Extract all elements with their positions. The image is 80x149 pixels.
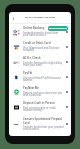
button[interactable]: More info — [65, 30, 69, 34]
staticText: PayPal — [23, 71, 33, 75]
button[interactable]: More info — [65, 90, 69, 94]
staticText: SELECT PAYMENT METHOD — [25, 16, 56, 19]
button[interactable]: ACH e-Check — [9, 54, 71, 69]
staticText: Transfer funds from your prepaid card ac… — [23, 125, 64, 131]
staticText: PayNearMe — [23, 86, 40, 90]
button[interactable]: Online Banking — [9, 24, 71, 39]
button[interactable]: Caesars Sportsbook Prepaid Card — [9, 114, 71, 134]
button[interactable]: PayNearMe — [9, 84, 71, 99]
staticText: RECOMMENDED — [49, 27, 67, 30]
staticText: Transfer funds with a light delay from y… — [23, 61, 64, 67]
button[interactable]: Back — [9, 14, 17, 22]
button[interactable]: More info — [65, 60, 69, 64]
staticText: Instantly transfer funds from your bank … — [23, 31, 64, 37]
staticText: Online Banking — [23, 26, 45, 30]
staticText: Find a casino cage or retail location ne… — [23, 106, 64, 112]
button[interactable]: Credit or Debit Card — [9, 39, 71, 54]
staticText: Caesars Sportsbook Prepaid Card — [23, 117, 64, 124]
button[interactable]: Deposit Cash in Person — [9, 99, 71, 114]
staticText: Visa, Mastercard and Discover accepted — [23, 46, 64, 52]
staticText: Use your linked PayPal account balance — [23, 76, 64, 82]
button[interactable]: PayPal — [9, 69, 71, 84]
staticText: Credit or Debit Card — [23, 41, 51, 45]
button[interactable]: More info — [65, 75, 69, 79]
staticText: Deposit cash at a store near you with a … — [23, 91, 64, 97]
staticText: Deposit Cash in Person — [23, 101, 55, 105]
staticText: ACH e-Check — [23, 56, 41, 60]
button[interactable]: More info — [65, 105, 69, 109]
button[interactable]: More info — [65, 45, 69, 49]
button[interactable]: More info — [65, 122, 69, 126]
